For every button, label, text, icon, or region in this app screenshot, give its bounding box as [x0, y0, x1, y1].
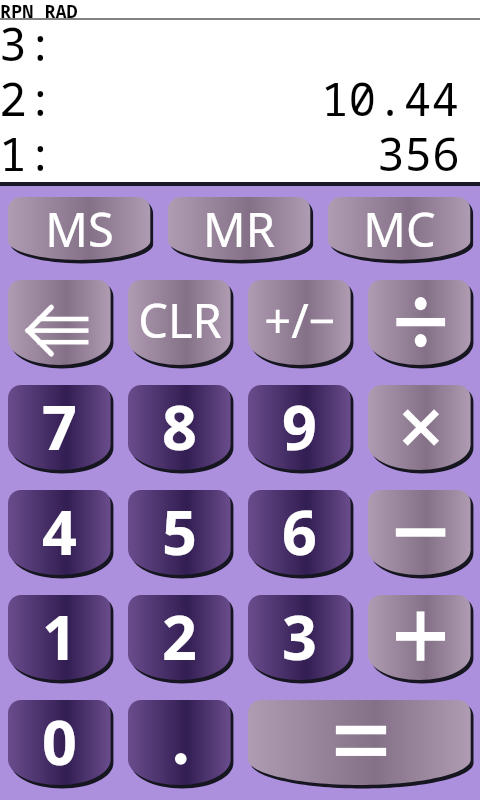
- button[interactable]: 9: [248, 385, 355, 474]
- staticText: 4: [42, 490, 77, 569]
- button[interactable]: MR: [168, 197, 314, 264]
- button[interactable]: Decimal point: [128, 700, 235, 789]
- staticText: CLR: [138, 288, 222, 352]
- staticText: 3:: [0, 12, 55, 66]
- staticText: 3: [282, 595, 317, 674]
- button[interactable]: 2: [128, 595, 235, 684]
- button[interactable]: 3: [248, 595, 355, 684]
- button[interactable]: Subtract: [368, 490, 475, 579]
- button[interactable]: Backspace: [8, 280, 115, 369]
- staticText: 8: [162, 385, 197, 464]
- staticText: MC: [363, 197, 436, 256]
- staticText: 2: [162, 595, 197, 674]
- button[interactable]: Multiply: [368, 385, 475, 474]
- button[interactable]: Add: [368, 595, 475, 684]
- staticText: 7: [42, 385, 77, 464]
- button[interactable]: 7: [8, 385, 115, 474]
- staticText: 5: [162, 490, 197, 569]
- staticText: 6: [282, 490, 317, 569]
- button[interactable]: 5: [128, 490, 235, 579]
- button[interactable]: 0: [8, 700, 115, 789]
- button[interactable]: 4: [8, 490, 115, 579]
- button[interactable]: MS: [8, 197, 154, 264]
- staticText: 0: [42, 700, 77, 779]
- staticText: 2:: [0, 67, 55, 121]
- staticText: +/−: [264, 288, 336, 352]
- staticText: 1: [42, 595, 77, 674]
- staticText: RPN RAD: [0, 0, 78, 23]
- button[interactable]: 8: [128, 385, 235, 474]
- button[interactable]: 6: [248, 490, 355, 579]
- button[interactable]: Equals: [248, 700, 475, 789]
- button[interactable]: Divide: [368, 280, 475, 369]
- staticText: 10.44: [321, 67, 460, 121]
- button[interactable]: CLR: [128, 280, 235, 369]
- staticText: MS: [45, 197, 114, 256]
- button[interactable]: 1: [8, 595, 115, 684]
- staticText: MR: [203, 197, 275, 256]
- staticText: 9: [282, 385, 317, 464]
- staticText: 1:: [0, 122, 55, 176]
- staticText: 356: [377, 122, 460, 176]
- button[interactable]: MC: [328, 197, 474, 264]
- button[interactable]: +/−: [248, 280, 355, 369]
